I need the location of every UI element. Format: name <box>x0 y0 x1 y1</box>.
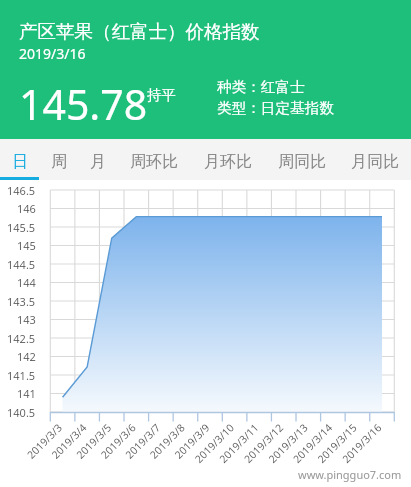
staticText: 周环比 <box>130 152 178 172</box>
staticText: 月同比 <box>351 152 399 172</box>
staticText: 持平 <box>147 86 176 104</box>
button[interactable]: 月同比 <box>339 139 411 180</box>
staticText: 145.78 <box>19 76 148 132</box>
button[interactable]: 月环比 <box>191 139 265 180</box>
staticText: 周同比 <box>278 152 326 172</box>
staticText: 月环比 <box>204 152 252 172</box>
staticText: 种类：红富士 <box>217 78 305 96</box>
staticText: 日 <box>12 152 28 172</box>
staticText: 周 <box>51 152 67 172</box>
button[interactable]: 月 <box>78 139 117 180</box>
staticText: 2019/3/16 <box>19 44 86 63</box>
button[interactable]: 日 <box>0 139 39 180</box>
button[interactable]: 周同比 <box>265 139 339 180</box>
button[interactable]: 周 <box>39 139 78 180</box>
staticText: 类型：日定基指数 <box>217 99 334 117</box>
staticText: 月 <box>90 152 106 172</box>
staticText: 产区苹果（红富士）价格指数 <box>19 20 260 43</box>
button[interactable]: 周环比 <box>117 139 191 180</box>
